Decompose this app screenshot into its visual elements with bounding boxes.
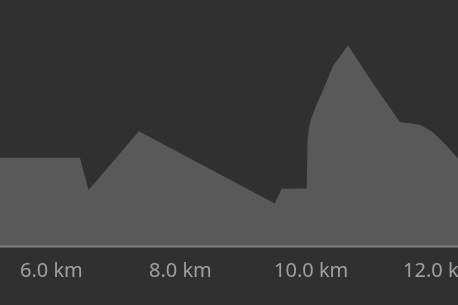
staticText: 10.0 km bbox=[274, 256, 349, 283]
button[interactable]: Elevation profile chart bbox=[0, 0, 458, 305]
staticText: 6.0 km bbox=[20, 256, 83, 283]
staticText: 12.0 km bbox=[403, 256, 458, 283]
staticText: 8.0 km bbox=[149, 256, 212, 283]
